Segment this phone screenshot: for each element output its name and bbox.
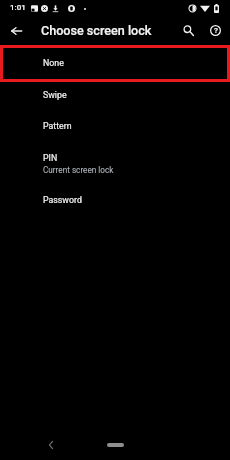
staticText: Password — [43, 195, 82, 205]
button[interactable]: PIN — [0, 145, 230, 187]
button[interactable]: Swipe — [0, 80, 230, 111]
button[interactable]: Back — [6, 20, 27, 41]
staticText: Swipe — [43, 90, 67, 100]
button[interactable]: None — [0, 48, 230, 79]
staticText: Current screen lock — [43, 165, 114, 175]
staticText: 1:01 — [10, 3, 26, 12]
staticText: PIN — [43, 153, 58, 163]
staticText: Pattern — [43, 121, 72, 131]
button[interactable]: Password — [0, 185, 230, 216]
button[interactable]: Help — [205, 20, 226, 41]
button[interactable]: Pattern — [0, 111, 230, 142]
staticText: ? — [214, 26, 218, 35]
button[interactable]: Search — [178, 20, 199, 41]
button[interactable]: Back — [41, 435, 61, 455]
staticText: Choose screen lock — [41, 23, 152, 38]
staticText: None — [43, 58, 64, 68]
button[interactable]: Home — [107, 443, 124, 447]
